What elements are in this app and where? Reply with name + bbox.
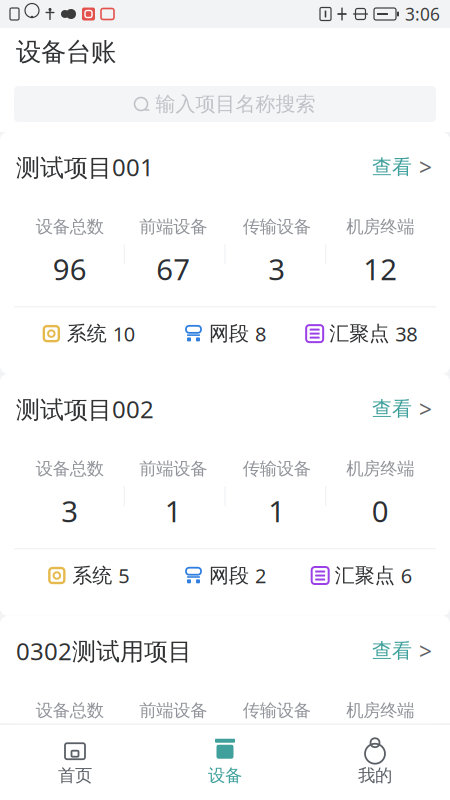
staticText: 系统 (67, 321, 107, 346)
staticText: 前端设备 (139, 458, 207, 479)
staticText: 0 (372, 733, 389, 772)
staticText: 系统 (72, 563, 112, 588)
staticText: 测试项目001 (16, 151, 154, 183)
staticText: 查看 (372, 639, 412, 663)
staticText: 输入项目名称搜索 (155, 92, 315, 116)
staticText: 前端设备 (139, 216, 207, 237)
staticText: 5 (118, 562, 129, 589)
staticText: 1 (165, 491, 182, 530)
staticText: 设备总数 (36, 216, 104, 237)
staticText: 测试项目002 (16, 393, 154, 425)
staticText: > (419, 152, 432, 182)
staticText: 0 (372, 491, 389, 530)
staticText: 首页 (58, 765, 92, 786)
staticText: 汇聚点 (335, 563, 395, 588)
staticText: 1 (268, 491, 285, 530)
staticText: 设备总数 (36, 700, 104, 721)
staticText: 传输设备 (243, 216, 311, 237)
staticText: 2 (255, 562, 266, 589)
staticText: 8 (255, 320, 266, 347)
button[interactable]: 查看 (370, 632, 434, 670)
staticText: 网段 (209, 563, 249, 588)
staticText: 传输设备 (243, 700, 311, 721)
staticText: 96 (53, 249, 87, 288)
staticText: 3 (61, 491, 78, 530)
staticText: 机房终端 (346, 458, 414, 479)
button[interactable]: 查看 (370, 390, 434, 428)
button[interactable]: 首页 (0, 731, 150, 792)
staticText: 设备台账 (16, 36, 116, 67)
button[interactable]: 查看 (370, 148, 434, 186)
button[interactable]: 设备 (150, 731, 300, 792)
staticText: 前端设备 (139, 700, 207, 721)
staticText: 网段 (209, 321, 249, 346)
staticText: 汇聚点 (329, 321, 389, 346)
button[interactable]: 输入项目名称搜索 (0, 76, 450, 132)
staticText: 机房终端 (346, 216, 414, 237)
staticText: 67 (156, 249, 190, 288)
staticText: 设备总数 (36, 458, 104, 479)
staticText: 查看 (372, 155, 412, 179)
staticText: > (419, 636, 432, 666)
staticText: 3 (268, 249, 285, 288)
staticText: 我的 (358, 765, 392, 786)
staticText: > (419, 394, 432, 424)
staticText: 12 (363, 249, 397, 288)
staticText: 10 (113, 320, 135, 347)
staticText: 2 (61, 733, 78, 772)
button[interactable]: 我的 (300, 731, 450, 792)
staticText: 3:06 (405, 2, 440, 25)
staticText: 0302测试用项目 (16, 635, 192, 667)
staticText: 设备 (208, 765, 242, 786)
staticText: 传输设备 (243, 458, 311, 479)
staticText: 38 (395, 320, 417, 347)
staticText: 机房终端 (346, 700, 414, 721)
staticText: 6 (401, 562, 412, 589)
staticText: 查看 (372, 397, 412, 421)
